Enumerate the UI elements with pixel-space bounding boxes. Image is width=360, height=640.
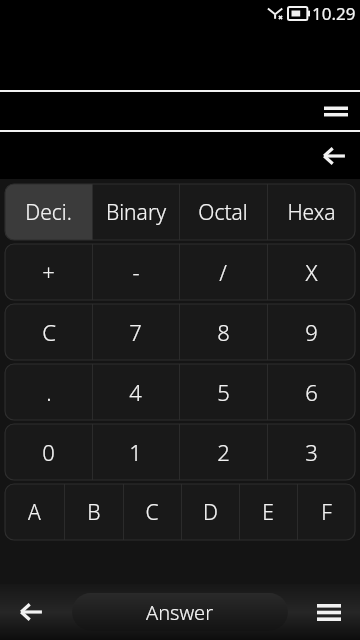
button[interactable]: D bbox=[181, 484, 239, 540]
button[interactable]: Binary bbox=[92, 184, 179, 240]
button[interactable]: 0 bbox=[5, 424, 92, 480]
staticText: + bbox=[42, 257, 55, 287]
button[interactable]: 9 bbox=[267, 304, 355, 360]
staticText: / bbox=[219, 257, 227, 287]
staticText: X bbox=[305, 257, 318, 287]
button[interactable]: Options menu bbox=[298, 584, 360, 640]
button[interactable]: E bbox=[239, 484, 297, 540]
staticText: C bbox=[145, 498, 159, 527]
button[interactable]: Menu bbox=[312, 92, 360, 130]
button[interactable]: 4 bbox=[92, 364, 179, 420]
staticText: 10.29 bbox=[312, 2, 356, 25]
button[interactable]: 7 bbox=[92, 304, 179, 360]
button[interactable]: 2 bbox=[179, 424, 267, 480]
staticText: 7 bbox=[129, 317, 142, 347]
button[interactable]: 6 bbox=[267, 364, 355, 420]
button[interactable]: Answer bbox=[72, 593, 288, 631]
staticText: 6 bbox=[305, 377, 318, 407]
button[interactable]: C bbox=[5, 304, 92, 360]
button[interactable]: 1 bbox=[92, 424, 179, 480]
button[interactable]: A bbox=[5, 484, 64, 540]
button[interactable]: F bbox=[297, 484, 355, 540]
button[interactable]: X bbox=[267, 244, 355, 300]
staticText: 5 bbox=[217, 377, 230, 407]
staticText: Octal bbox=[198, 198, 248, 227]
staticText: - bbox=[132, 257, 140, 287]
button[interactable]: Octal bbox=[179, 184, 267, 240]
button[interactable]: 3 bbox=[267, 424, 355, 480]
button[interactable]: C bbox=[123, 484, 181, 540]
staticText: F bbox=[321, 498, 332, 527]
button[interactable]: Deci. bbox=[5, 184, 92, 240]
staticText: C bbox=[42, 317, 56, 347]
button[interactable]: / bbox=[179, 244, 267, 300]
staticText: 0 bbox=[42, 437, 55, 467]
staticText: Answer bbox=[146, 599, 214, 626]
button[interactable]: B bbox=[64, 484, 123, 540]
staticText: 8 bbox=[217, 317, 230, 347]
staticText: 1 bbox=[129, 437, 142, 467]
staticText: Hexa bbox=[287, 198, 336, 227]
staticText: 2 bbox=[217, 437, 230, 467]
button[interactable]: 5 bbox=[179, 364, 267, 420]
staticText: A bbox=[28, 498, 41, 527]
staticText: . bbox=[46, 377, 52, 407]
staticText: 4 bbox=[129, 377, 142, 407]
button[interactable]: 8 bbox=[179, 304, 267, 360]
staticText: 9 bbox=[305, 317, 318, 347]
staticText: E bbox=[262, 498, 274, 527]
staticText: 3 bbox=[305, 437, 318, 467]
staticText: D bbox=[203, 498, 218, 527]
button[interactable]: Back bbox=[0, 584, 62, 640]
button[interactable]: . bbox=[5, 364, 92, 420]
button[interactable]: - bbox=[92, 244, 179, 300]
staticText: B bbox=[87, 498, 101, 527]
button[interactable]: + bbox=[5, 244, 92, 300]
button[interactable]: Hexa bbox=[267, 184, 355, 240]
staticText: Binary bbox=[106, 198, 166, 227]
button[interactable]: Back bbox=[308, 132, 360, 179]
staticText: Deci. bbox=[25, 198, 72, 227]
